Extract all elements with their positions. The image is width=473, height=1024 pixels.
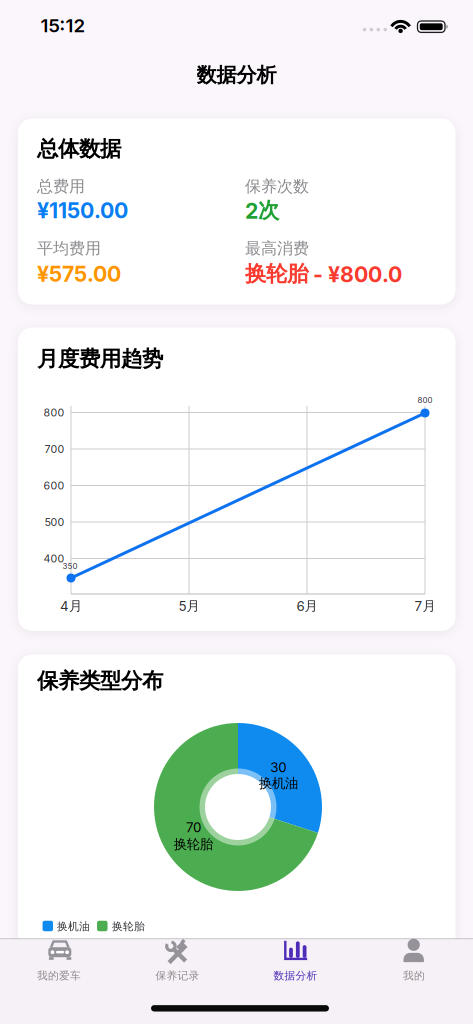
button[interactable]: 我的爱车 (0, 925, 118, 987)
staticText: ¥575.00 (37, 261, 121, 287)
button[interactable]: 保养记录 (118, 925, 236, 987)
staticText: 800 (43, 406, 64, 419)
staticText: 5月 (178, 598, 199, 614)
staticText: 平均费用 (37, 239, 101, 258)
staticText: 月度费用趋势 (37, 346, 163, 372)
staticText: 400 (43, 552, 64, 565)
button[interactable]: 数据分析 (236, 925, 355, 987)
staticText: 4月 (60, 598, 82, 614)
staticText: 保养类型分布 (37, 668, 163, 694)
staticText: 换轮胎 (112, 920, 145, 933)
staticText: 保养次数 (245, 177, 309, 196)
staticText: 800 (417, 395, 432, 405)
staticText: 600 (43, 479, 64, 492)
staticText: 换轮胎 (174, 836, 213, 852)
staticText: 换轮胎 - ¥800.0 (245, 261, 402, 287)
staticText: 数据分析 (274, 969, 318, 982)
staticText: 700 (44, 443, 64, 455)
staticText: 保养记录 (155, 969, 199, 982)
staticText: 500 (44, 516, 64, 528)
staticText: 15:12 (40, 14, 85, 36)
staticText: 总体数据 (37, 136, 121, 162)
staticText: 最高消费 (245, 239, 309, 258)
button[interactable]: 我的 (355, 925, 473, 987)
staticText: 6月 (296, 598, 317, 614)
staticText: 我的 (403, 969, 425, 982)
staticText: 换机油 (259, 775, 298, 792)
staticText: 数据分析 (196, 63, 276, 87)
staticText: 30 (270, 760, 286, 775)
staticText: 70 (186, 820, 201, 835)
staticText: 7月 (414, 598, 435, 614)
staticText: 350 (62, 561, 77, 571)
staticText: 我的爱车 (37, 969, 81, 982)
staticText: 2次 (245, 197, 279, 224)
staticText: 总费用 (37, 177, 85, 196)
staticText: 换机油 (57, 920, 90, 933)
staticText: ¥1150.00 (37, 198, 128, 223)
